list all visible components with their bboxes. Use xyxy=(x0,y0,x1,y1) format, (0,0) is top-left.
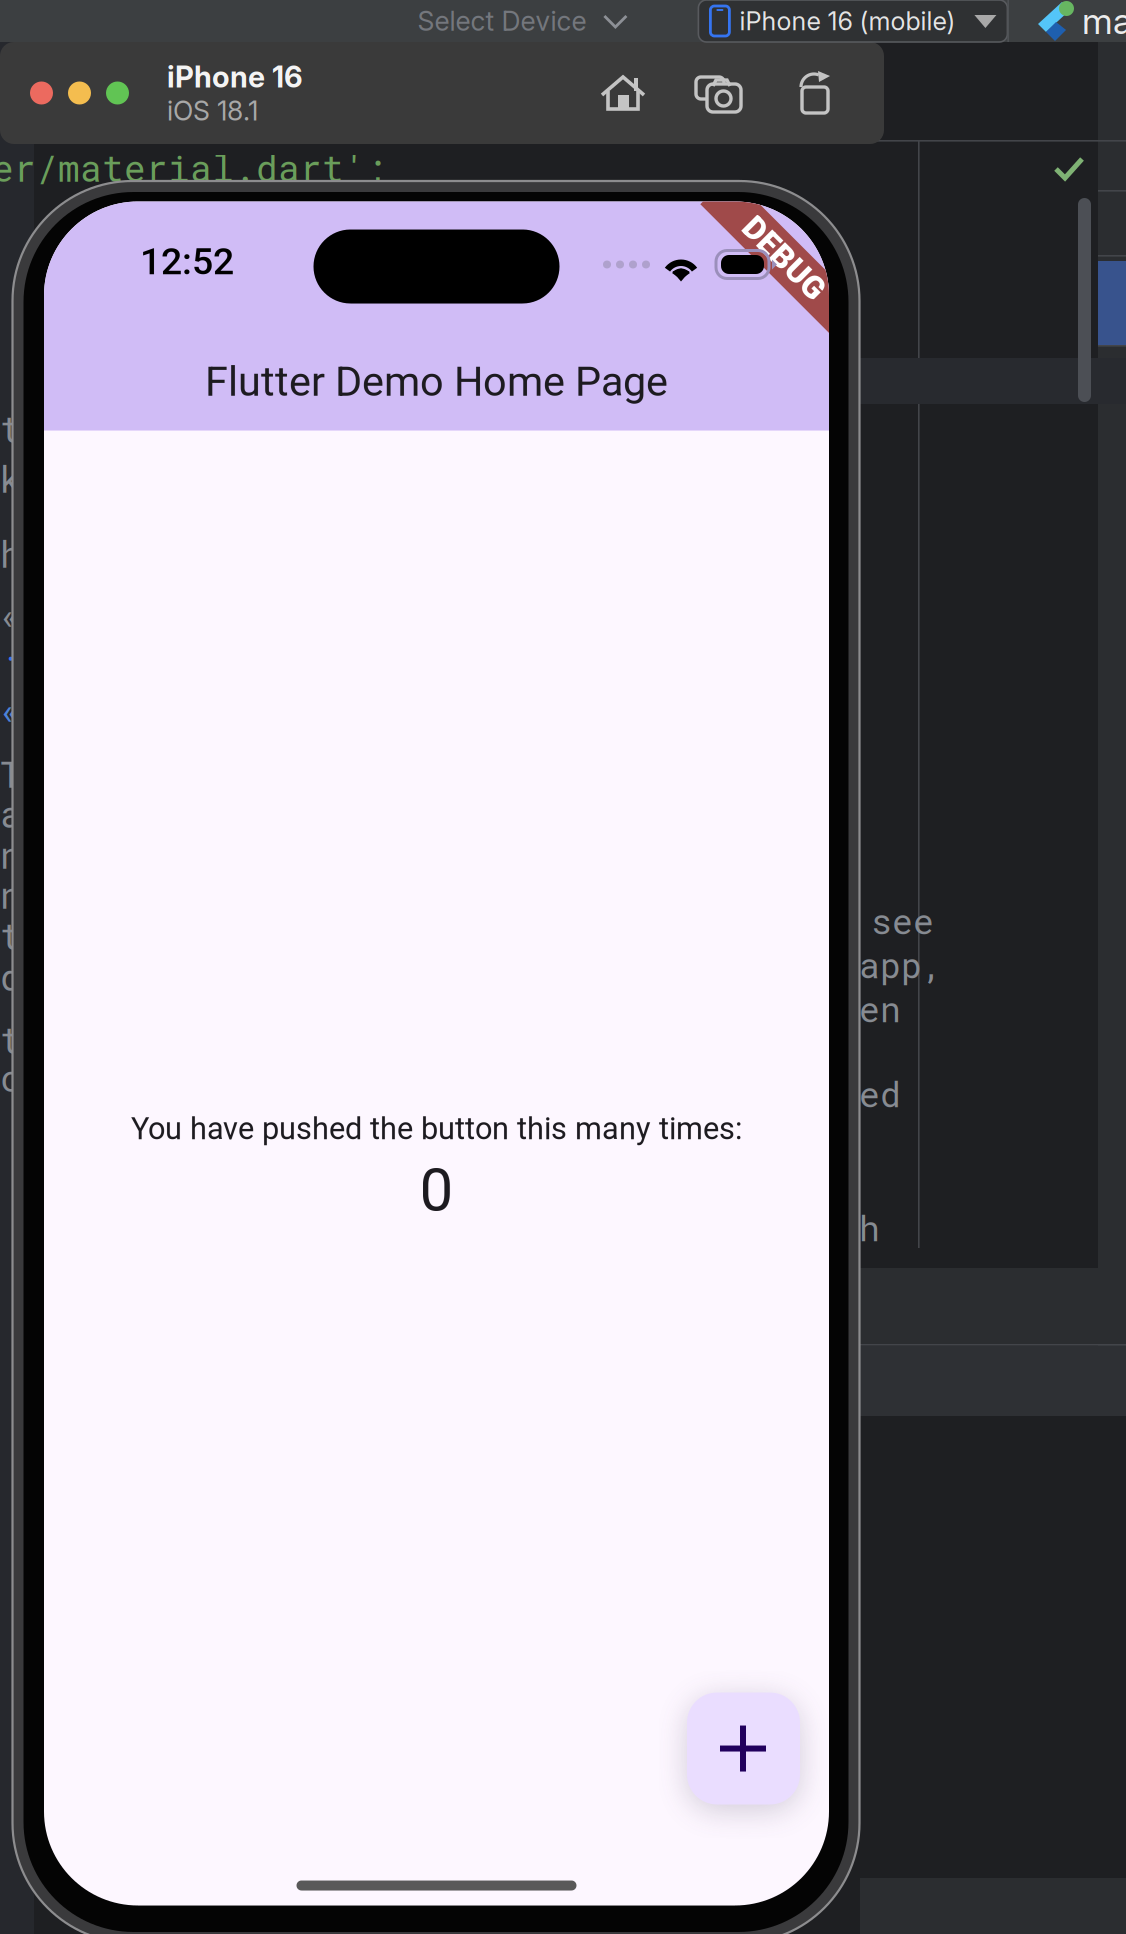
staticText: Select Device xyxy=(417,5,586,37)
staticText: iPhone 16 (mobile) xyxy=(739,6,955,36)
staticText: a xyxy=(0,790,22,837)
staticText: iPhone 16 xyxy=(167,59,303,95)
staticText: Flutter Demo Home Page xyxy=(205,357,668,406)
staticText: er/material.dart'; xyxy=(0,144,388,191)
staticText: iOS 18.1 xyxy=(167,95,258,127)
staticText: · xyxy=(0,634,22,681)
staticText: t xyxy=(0,405,22,452)
staticText: n xyxy=(0,871,22,918)
staticText: t xyxy=(0,912,22,959)
staticText: app, xyxy=(859,942,943,988)
staticText: 12:52 xyxy=(140,239,234,283)
button[interactable]: Increment xyxy=(687,1692,800,1804)
button[interactable]: Select Device xyxy=(409,0,636,42)
button[interactable]: Home xyxy=(600,71,646,115)
staticText: You have pushed the button this many tim… xyxy=(131,1111,742,1147)
staticText: ed xyxy=(859,1071,901,1117)
button[interactable]: Screenshot xyxy=(694,71,744,115)
staticText: h xyxy=(859,1205,880,1251)
staticText: see xyxy=(871,898,934,944)
staticText: T xyxy=(0,750,22,797)
staticText: t xyxy=(0,1016,22,1063)
staticText: « xyxy=(0,686,22,733)
staticText: DEBUG xyxy=(776,177,879,214)
staticText: h xyxy=(0,530,22,577)
staticText: mai xyxy=(1082,0,1126,43)
staticText: k xyxy=(0,455,22,502)
staticText: 0 xyxy=(419,1155,453,1225)
staticText: c xyxy=(0,1054,22,1101)
staticText: en xyxy=(859,986,901,1032)
button[interactable]: Rotate xyxy=(792,71,836,115)
button[interactable]: iPhone 16 (mobile) xyxy=(698,0,1007,42)
staticText: d xyxy=(0,953,22,1000)
staticText: « xyxy=(0,591,22,638)
staticText: n xyxy=(0,831,22,878)
